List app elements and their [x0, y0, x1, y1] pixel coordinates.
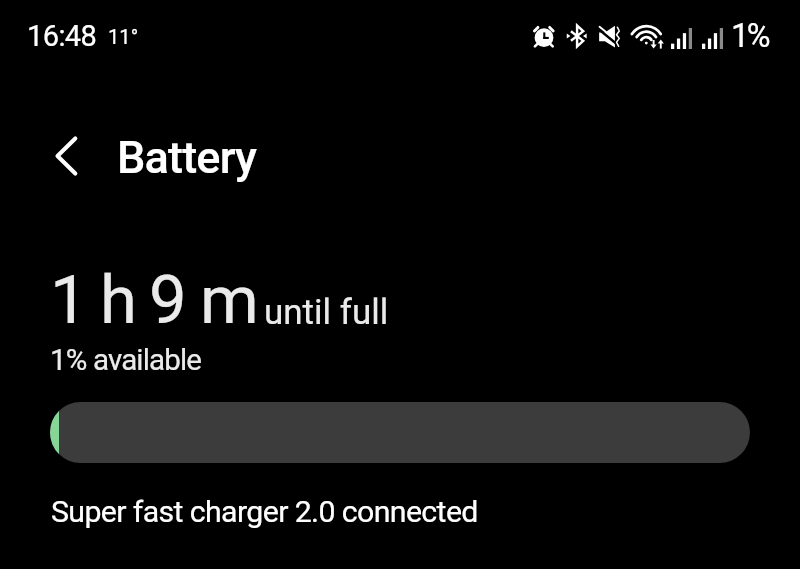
button[interactable]: Navigate up [34, 120, 96, 192]
staticText: 9 [149, 261, 187, 340]
staticText: 1% [731, 17, 768, 55]
staticText: Battery [117, 131, 257, 184]
button[interactable]: Battery level 1 percent [50, 402, 750, 463]
staticText: h [100, 261, 137, 340]
staticText: 1% available [50, 343, 202, 378]
staticText: until full [264, 292, 389, 333]
staticText: 16:48 [27, 19, 97, 53]
staticText: 11° [108, 25, 139, 48]
staticText: Super fast charger 2.0 connected [51, 494, 478, 530]
staticText: m [200, 261, 259, 340]
staticText: 1 [50, 261, 88, 340]
